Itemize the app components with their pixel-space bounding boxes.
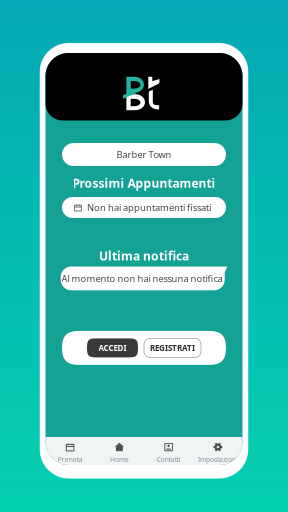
- button[interactable]: Prenota: [45, 437, 95, 465]
- button[interactable]: Impostazioni: [193, 437, 242, 465]
- staticText: Contatti: [157, 455, 181, 464]
- staticText: Prossimi Appuntamenti: [72, 175, 215, 191]
- staticText: Impostazioni: [198, 455, 238, 464]
- staticText: REGISTRATI: [150, 343, 195, 353]
- button[interactable]: ACCEDI: [87, 338, 138, 357]
- staticText: Ultima notifica: [99, 248, 189, 264]
- button[interactable]: Al momento non hai nessuna notifica: [61, 266, 227, 290]
- button[interactable]: REGISTRATI: [144, 338, 201, 357]
- staticText: ACCEDI: [98, 343, 126, 353]
- button[interactable]: Contatti: [144, 437, 193, 465]
- staticText: Non hai appuntamenti fissati: [87, 201, 211, 214]
- button[interactable]: Home: [95, 437, 144, 465]
- staticText: Prenota: [58, 455, 83, 464]
- button[interactable]: Non hai appuntamenti fissati: [62, 197, 226, 218]
- staticText: Al momento non hai nessuna notifica: [61, 272, 222, 285]
- button[interactable]: Barber Town: [62, 143, 226, 166]
- staticText: Home: [110, 455, 129, 464]
- staticText: Barber Town: [116, 148, 171, 161]
